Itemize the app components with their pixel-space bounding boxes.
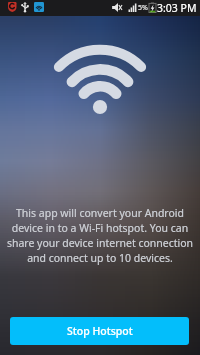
staticText: Stop Hotspot — [67, 324, 133, 338]
staticText: 5% — [138, 3, 148, 13]
button[interactable]: Stop Hotspot — [10, 317, 189, 345]
staticText: This app will convert your Android devic… — [4, 206, 196, 265]
staticText: 3:03 PM — [157, 1, 197, 15]
